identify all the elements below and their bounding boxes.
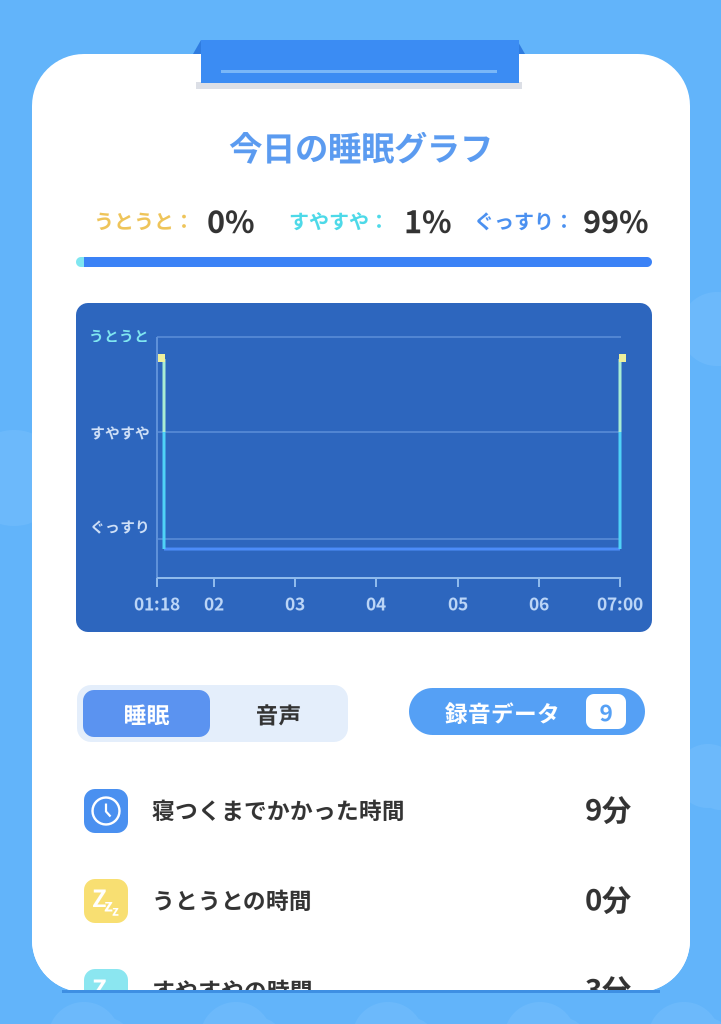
staticText: 04 — [366, 590, 386, 616]
staticText: ぐっすり： — [474, 205, 574, 234]
staticText: 0分 — [585, 877, 631, 919]
staticText: 03 — [285, 590, 305, 616]
staticText: 01:18 — [134, 590, 180, 616]
staticText: z — [104, 891, 113, 917]
staticText: 音声 — [255, 697, 301, 730]
button[interactable]: 録音データ — [409, 688, 645, 735]
staticText: 1% — [404, 198, 452, 242]
staticText: z — [112, 900, 119, 920]
staticText: ぐっすり — [90, 515, 150, 537]
staticText: z — [104, 981, 113, 1007]
button[interactable]: 音声 — [215, 690, 342, 737]
staticText: うとうと： — [94, 205, 194, 234]
staticText: Z — [92, 880, 107, 914]
staticText: すやすやの時間 — [152, 973, 313, 1005]
staticText: 07:00 — [597, 590, 643, 616]
staticText: 3分 — [585, 967, 631, 1009]
staticText: 今日の睡眠グラフ — [229, 122, 493, 170]
staticText: 99% — [583, 198, 649, 242]
button[interactable]: Z — [32, 949, 690, 1024]
staticText: すやすや — [90, 421, 150, 443]
staticText: 寝つくまでかかった時間 — [152, 793, 405, 825]
button[interactable]: 寝つくまでかかった時間 — [32, 769, 690, 859]
staticText: 9分 — [585, 787, 631, 829]
staticText: z — [112, 990, 119, 1010]
button[interactable]: 睡眠 — [83, 690, 210, 737]
staticText: 睡眠 — [123, 697, 169, 730]
staticText: すやすや： — [289, 205, 389, 234]
button[interactable]: Z — [32, 859, 690, 949]
staticText: 02 — [204, 590, 224, 616]
staticText: うとうとの時間 — [152, 883, 312, 915]
staticText: 05 — [448, 590, 468, 616]
staticText: うとうと — [89, 324, 149, 346]
staticText: 06 — [529, 590, 549, 616]
staticText: 録音データ — [445, 696, 560, 728]
staticText: 0% — [207, 198, 255, 242]
staticText: Z — [92, 970, 107, 1004]
staticText: 9 — [599, 695, 612, 728]
